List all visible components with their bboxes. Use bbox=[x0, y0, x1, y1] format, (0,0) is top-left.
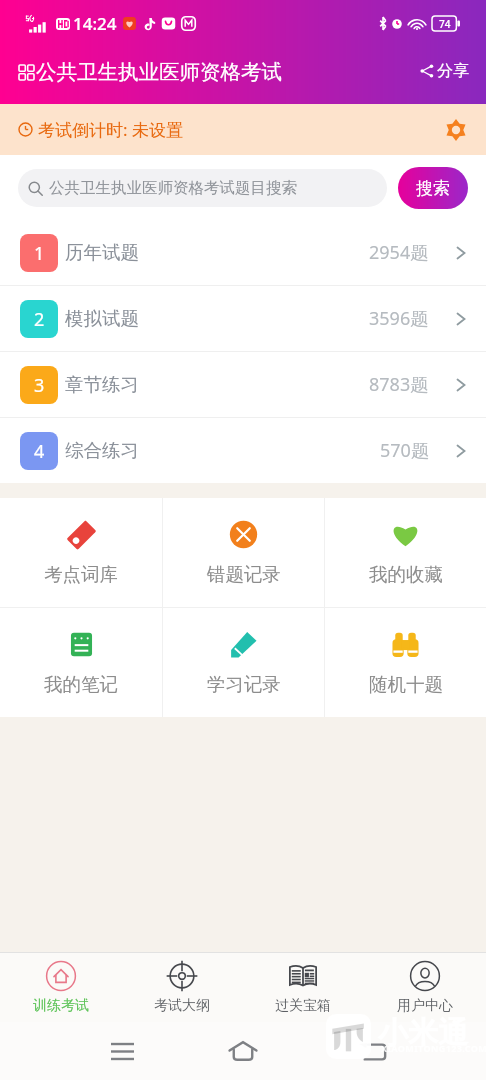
staticText: 模拟试题 bbox=[65, 307, 139, 330]
staticText: 公共卫生执业医师资格考试题目搜索 bbox=[49, 178, 297, 198]
staticText: 学习记录 bbox=[207, 673, 281, 696]
button[interactable]: Recent apps bbox=[98, 1027, 146, 1075]
button[interactable]: 4 bbox=[0, 418, 486, 483]
button[interactable]: 错题记录 bbox=[163, 498, 324, 607]
staticText: 8783题 bbox=[369, 372, 429, 397]
staticText: 4 bbox=[34, 439, 45, 464]
staticText: 训练考试 bbox=[33, 997, 89, 1015]
staticText: 错题记录 bbox=[207, 563, 281, 586]
staticText: 我的笔记 bbox=[44, 673, 118, 696]
button[interactable]: 考点词库 bbox=[0, 498, 162, 607]
button[interactable]: 公共卫生执业医师资格考试题目搜索 bbox=[18, 169, 387, 207]
staticText: 公共卫生执业医师资格考试 bbox=[36, 59, 282, 85]
staticText: 过关宝箱 bbox=[275, 997, 331, 1015]
staticText: 3 bbox=[34, 373, 45, 398]
staticText: 小米通 bbox=[378, 1014, 468, 1052]
staticText: 章节练习 bbox=[65, 373, 139, 396]
button[interactable]: Home bbox=[219, 1027, 267, 1075]
button[interactable]: 1 bbox=[0, 220, 486, 285]
button[interactable]: 随机十题 bbox=[325, 608, 486, 717]
staticText: XIAOMITONG123.COM bbox=[381, 1042, 486, 1054]
staticText: 我的收藏 bbox=[369, 563, 443, 586]
staticText: 搜索 bbox=[416, 178, 450, 199]
button[interactable]: 训练考试 bbox=[0, 953, 121, 1022]
staticText: 考试倒计时: 未设置 bbox=[38, 118, 183, 141]
staticText: 3596题 bbox=[369, 306, 429, 331]
button[interactable]: 搜索 bbox=[398, 167, 468, 209]
button[interactable]: 考试倒计时: 未设置 bbox=[0, 104, 486, 155]
staticText: 考点词库 bbox=[44, 563, 118, 586]
staticText: 用户中心 bbox=[397, 997, 453, 1015]
button[interactable]: Back bbox=[348, 1027, 396, 1075]
button[interactable]: 2 bbox=[0, 286, 486, 351]
button[interactable]: 我的收藏 bbox=[325, 498, 486, 607]
staticText: 考试大纲 bbox=[154, 997, 210, 1015]
staticText: 综合练习 bbox=[65, 439, 139, 462]
button[interactable]: 考试大纲 bbox=[121, 953, 242, 1022]
button[interactable]: 学习记录 bbox=[163, 608, 324, 717]
staticText: 分享 bbox=[437, 61, 469, 81]
button[interactable]: Settings bbox=[440, 114, 472, 146]
button[interactable]: 过关宝箱 bbox=[242, 953, 364, 1022]
button[interactable]: 我的笔记 bbox=[0, 608, 162, 717]
staticText: 随机十题 bbox=[369, 673, 443, 696]
staticText: 14:24 bbox=[73, 12, 117, 35]
staticText: 2 bbox=[34, 307, 45, 332]
staticText: 历年试题 bbox=[65, 241, 139, 264]
staticText: 2954题 bbox=[369, 240, 429, 265]
staticText: 74 bbox=[439, 17, 451, 31]
button[interactable]: 分享 bbox=[406, 53, 486, 89]
button[interactable]: 3 bbox=[0, 352, 486, 417]
staticText: 1 bbox=[34, 241, 45, 266]
button[interactable]: 用户中心 bbox=[364, 953, 486, 1022]
staticText: 570题 bbox=[380, 438, 429, 463]
